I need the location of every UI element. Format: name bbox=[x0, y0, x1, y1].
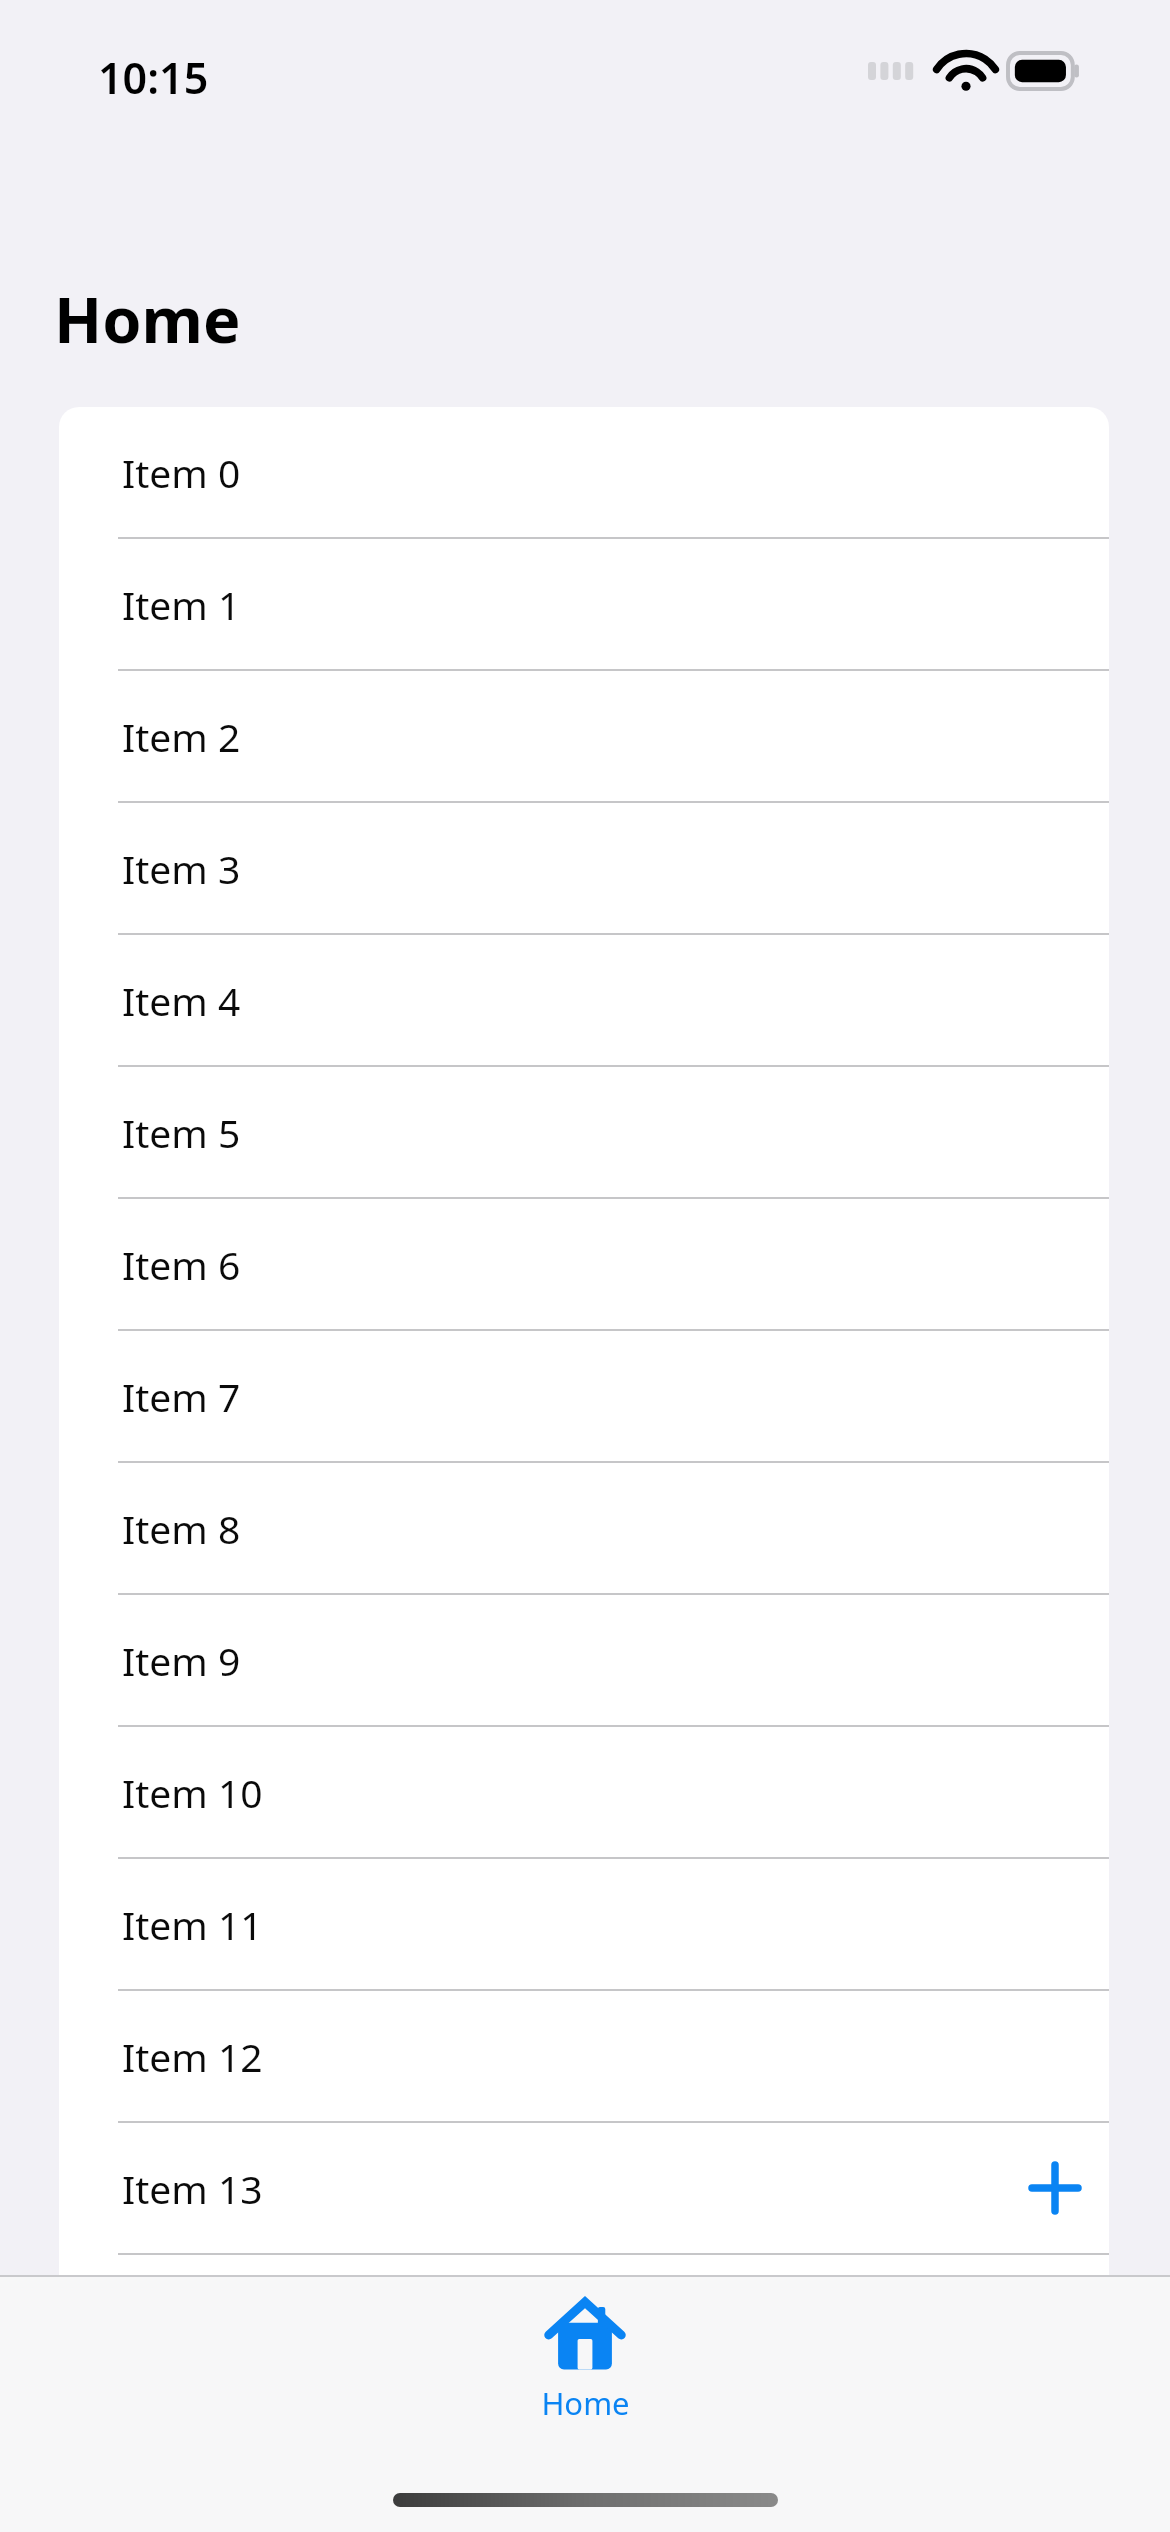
button[interactable]: Item 3 bbox=[59, 803, 1109, 933]
button[interactable]: Item 10 bbox=[59, 1727, 1109, 1857]
button[interactable]: Item 2 bbox=[59, 671, 1109, 801]
staticText: Item 7 bbox=[122, 1370, 241, 1423]
staticText: Item 8 bbox=[122, 1502, 241, 1555]
button[interactable]: Item 4 bbox=[59, 935, 1109, 1065]
button[interactable]: Item 6 bbox=[59, 1199, 1109, 1329]
staticText: Item 6 bbox=[122, 1238, 241, 1291]
staticText: Item 3 bbox=[122, 842, 241, 895]
staticText: Item 10 bbox=[122, 1766, 263, 1819]
other: Home tab bbox=[546, 2298, 624, 2372]
button[interactable]: Item 13 bbox=[59, 2123, 1109, 2253]
staticText: Item 5 bbox=[122, 1106, 241, 1159]
staticText: Item 1 bbox=[122, 578, 241, 631]
staticText: 10:15 bbox=[98, 48, 209, 107]
button[interactable]: Add item bbox=[1023, 2156, 1087, 2220]
button[interactable]: Item 12 bbox=[59, 1991, 1109, 2121]
staticText: Item 11 bbox=[122, 1898, 263, 1951]
button[interactable]: Item 5 bbox=[59, 1067, 1109, 1197]
staticText: Item 13 bbox=[122, 2162, 263, 2215]
button[interactable]: Item 1 bbox=[59, 539, 1109, 669]
staticText: Item 2 bbox=[122, 710, 241, 763]
staticText: Item 0 bbox=[122, 446, 241, 499]
button[interactable]: Item 8 bbox=[59, 1463, 1109, 1593]
staticText: Item 12 bbox=[122, 2030, 263, 2083]
staticText: Item 9 bbox=[122, 1634, 241, 1687]
staticText: Home bbox=[54, 276, 241, 362]
button[interactable]: Item 9 bbox=[59, 1595, 1109, 1725]
button[interactable]: Item 7 bbox=[59, 1331, 1109, 1461]
button[interactable]: Home tab bbox=[485, 2298, 685, 2424]
staticText: Home bbox=[541, 2382, 630, 2424]
button[interactable]: Item 0 bbox=[59, 407, 1109, 537]
staticText: Item 4 bbox=[122, 974, 241, 1027]
button[interactable]: Item 11 bbox=[59, 1859, 1109, 1989]
